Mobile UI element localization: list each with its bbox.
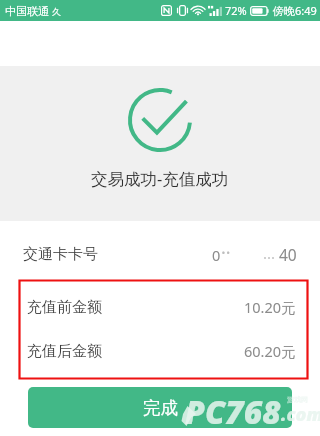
staticText: 充值后金额 (27, 342, 102, 361)
button[interactable]: 交通卡卡号 (0, 232, 320, 276)
staticText: ··· (263, 247, 276, 267)
button[interactable]: 充值后金额 (0, 329, 320, 373)
staticText: .com (281, 402, 320, 427)
staticText: PC768 (185, 390, 281, 434)
staticText: 交通卡卡号 (23, 245, 98, 264)
staticText: 久 (52, 6, 61, 17)
staticText: 傍晚6:49 (273, 3, 317, 18)
staticText: 中国联通 (5, 4, 49, 18)
staticText: 充值前金额 (27, 298, 102, 317)
staticText: 交易成功-充值成功 (91, 167, 229, 190)
button[interactable]: 完成 (28, 387, 292, 428)
staticText: 游戏网 (287, 395, 308, 404)
button[interactable]: 充值前金额 (0, 285, 320, 329)
staticText: 完成 (143, 397, 178, 419)
staticText: 10.20元 (244, 297, 296, 317)
staticText: 60.20元 (244, 341, 296, 361)
staticText: 0 (212, 245, 221, 265)
staticText: 40 (279, 244, 297, 265)
staticText: ·· (221, 240, 231, 265)
staticText: 72% (225, 3, 247, 18)
